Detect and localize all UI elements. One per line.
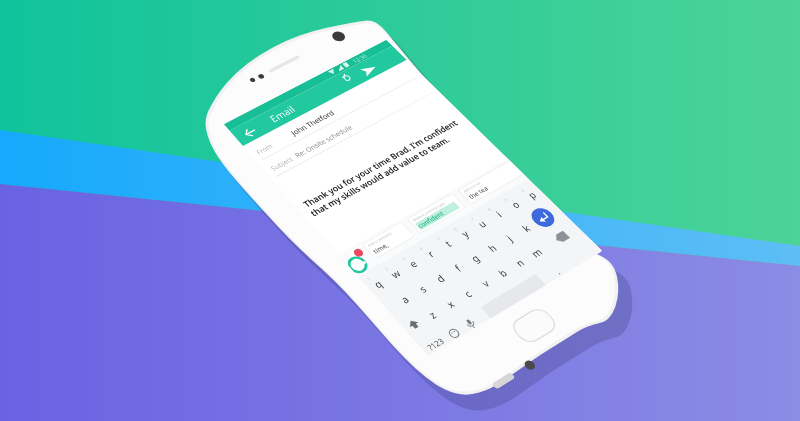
button[interactable] [0, 0, 800, 421]
